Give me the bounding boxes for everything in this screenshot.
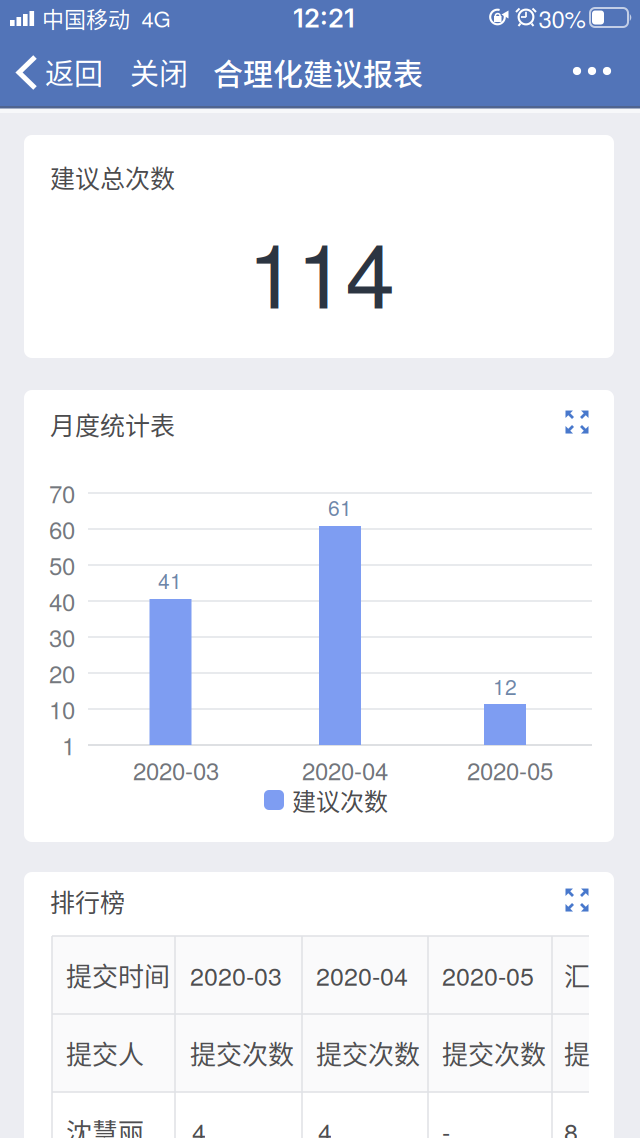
staticText: 30% — [538, 1, 585, 35]
staticText: 建议次数 — [292, 783, 388, 817]
staticText: 12 — [493, 671, 517, 701]
staticText: 20 — [49, 656, 75, 690]
staticText: 10 — [49, 692, 75, 726]
staticText: 合理化建议报表 — [213, 50, 423, 94]
staticText: 中国移动 — [42, 2, 130, 34]
staticText: 排行榜 — [50, 883, 125, 919]
staticText: 2020-05 — [442, 957, 534, 993]
staticText: 50 — [49, 548, 75, 582]
staticText: 建议总次数 — [50, 159, 175, 195]
staticText: 提交次数 — [442, 1034, 546, 1072]
staticText: 沈慧丽 — [66, 1112, 144, 1138]
staticText: 8 — [564, 1113, 578, 1138]
staticText: 4G — [141, 2, 170, 34]
staticText: 2020-03 — [133, 753, 219, 787]
staticText: 4 — [192, 1113, 206, 1138]
staticText: 提交时间 — [66, 956, 170, 994]
staticText: 12:21 — [293, 2, 355, 34]
staticText: 1 — [62, 728, 75, 762]
staticText: 2020-04 — [302, 753, 388, 787]
staticText: 4 — [318, 1113, 332, 1138]
staticText: 30 — [49, 620, 75, 654]
staticText: 61 — [328, 492, 352, 522]
staticText: 提 — [564, 1034, 590, 1072]
staticText: 60 — [49, 512, 75, 546]
staticText: 关闭 — [130, 51, 188, 93]
staticText: 40 — [49, 584, 75, 618]
staticText: 提交次数 — [316, 1034, 420, 1072]
staticText: 41 — [158, 565, 182, 595]
staticText: - — [442, 1113, 450, 1138]
staticText: 2020-05 — [467, 753, 553, 787]
staticText: 月度统计表 — [50, 406, 175, 442]
staticText: 汇 — [564, 956, 590, 994]
staticText: 2020-04 — [316, 957, 408, 993]
staticText: 提交次数 — [190, 1034, 294, 1072]
staticText: 114 — [247, 206, 394, 334]
staticText: 返回 — [45, 51, 103, 93]
staticText: 提交人 — [66, 1034, 144, 1072]
staticText: 70 — [49, 476, 75, 510]
staticText: 2020-03 — [190, 957, 282, 993]
